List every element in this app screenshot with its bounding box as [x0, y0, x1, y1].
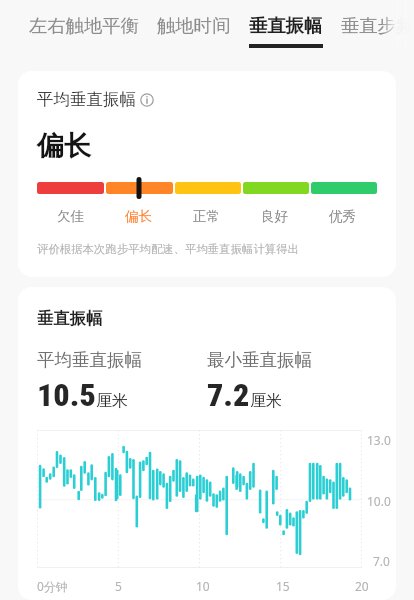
staticText: 7.2 — [207, 376, 250, 414]
staticText: 左右触地平衡 — [29, 14, 139, 37]
button[interactable]: 垂直振幅 — [249, 0, 323, 48]
staticText: 评价根据本次跑步平均配速、平均垂直振幅计算得出 — [37, 242, 299, 256]
button[interactable]: 触地时间 — [157, 0, 231, 44]
staticText: 良好 — [261, 208, 289, 225]
staticText: 正常 — [193, 208, 221, 225]
staticText: 15 — [276, 578, 290, 594]
staticText: 厘米 — [250, 391, 282, 411]
staticText: 优秀 — [329, 208, 357, 225]
staticText: 垂直振幅 — [249, 14, 323, 37]
staticText: 5 — [115, 578, 122, 594]
staticText: 0分钟 — [37, 578, 68, 594]
staticText: 10.5 — [37, 376, 96, 414]
staticText: 厘米 — [96, 391, 128, 411]
button[interactable]: 垂直步频 — [341, 0, 414, 44]
staticText: 10.0 — [367, 493, 391, 509]
staticText: 偏长 — [37, 129, 91, 163]
staticText: 20 — [355, 578, 369, 594]
staticText: 平均垂直振幅 — [37, 349, 142, 371]
staticText: 13.0 — [367, 432, 391, 448]
staticText: 触地时间 — [157, 14, 231, 37]
button[interactable]: 左右触地平衡 — [29, 0, 139, 44]
staticText: 平均垂直振幅 — [37, 89, 136, 110]
staticText: 7.0 — [373, 553, 390, 569]
staticText: 10 — [196, 578, 210, 594]
staticText: 欠佳 — [57, 208, 85, 225]
staticText: 偏长 — [125, 208, 153, 225]
staticText: 垂直步频 — [341, 14, 414, 37]
staticText: 垂直振幅 — [37, 308, 103, 329]
staticText: 最小垂直振幅 — [207, 349, 312, 371]
